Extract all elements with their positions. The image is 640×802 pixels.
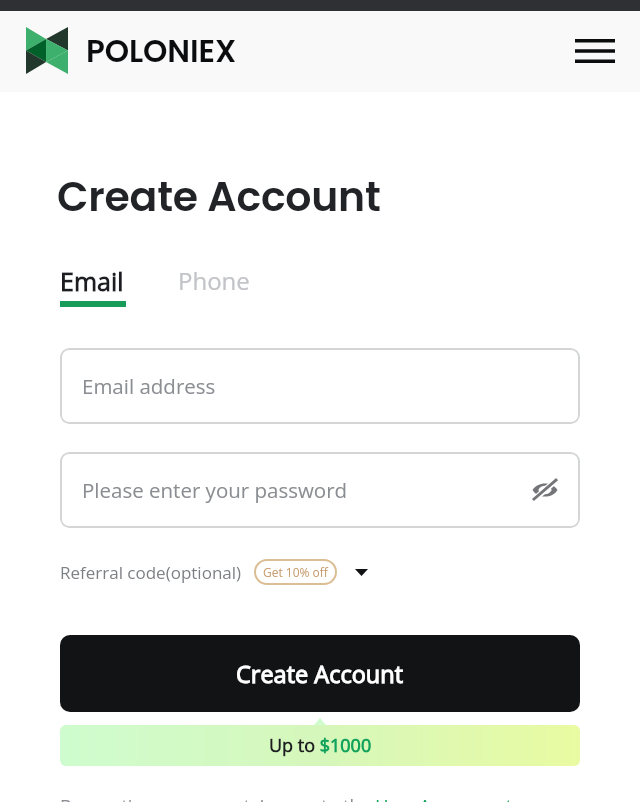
staticText: Email [60,264,124,298]
staticText: Email address [82,372,216,400]
button[interactable]: Show password [525,470,565,510]
button[interactable]: Email address [60,348,580,424]
staticText: Create Account [57,168,381,225]
staticText: Create Account [236,658,404,690]
staticText: POLONIEX [86,29,237,72]
staticText: Up to $1000 [269,733,372,758]
button[interactable]: Email [48,258,136,304]
button[interactable]: Please enter your password [60,452,580,528]
button[interactable]: Up to $1000 [60,725,580,766]
staticText: Please enter your password [82,476,348,504]
button[interactable]: Referral code(optional) [60,556,368,588]
staticText: Get 10% off [263,564,328,580]
staticText: Phone [178,264,250,297]
staticText: Referral code(optional) [60,561,242,584]
staticText: By creating an account, I agree to the U… [60,794,513,802]
button[interactable]: Phone [166,258,262,303]
button[interactable]: Menu [567,28,623,74]
button[interactable]: Create Account [60,635,580,712]
